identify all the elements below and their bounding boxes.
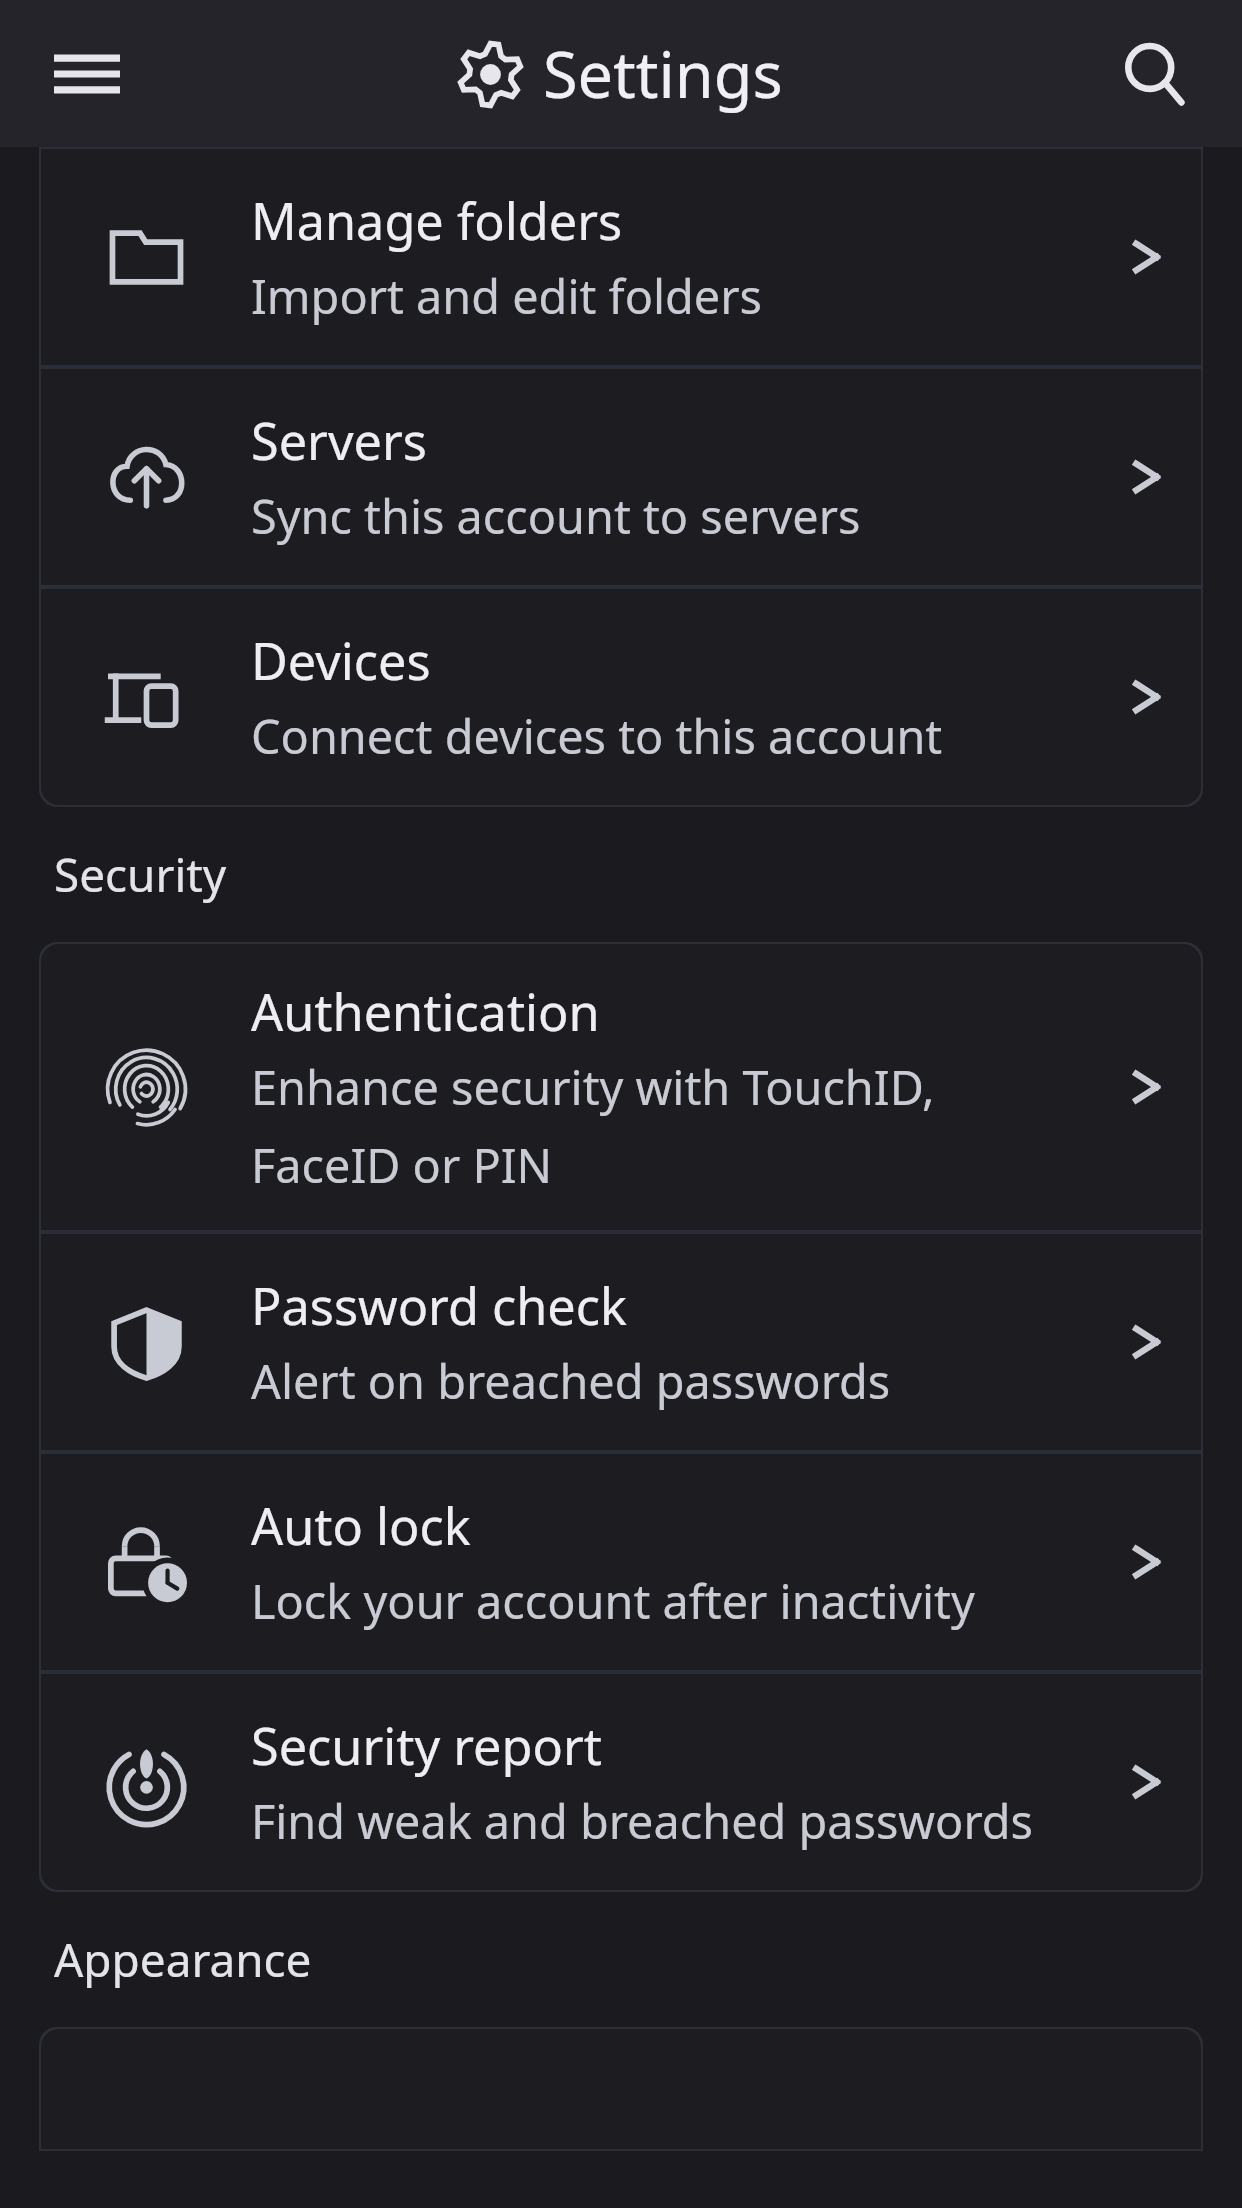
button[interactable]: Servers	[41, 369, 1201, 585]
staticText: Alert on breached passwords	[251, 1349, 891, 1413]
button[interactable]: Search	[1083, 2, 1227, 146]
button[interactable]: Security report	[41, 1674, 1201, 1890]
staticText: Servers	[251, 406, 427, 475]
button[interactable]: Password check	[41, 1234, 1201, 1450]
staticText: Authentication	[251, 977, 600, 1046]
staticText: Password check	[251, 1271, 627, 1340]
button[interactable]: Auto lock	[41, 1454, 1201, 1670]
staticText: Settings	[543, 31, 783, 117]
staticText: Import and edit folders	[251, 264, 762, 328]
staticText: Security report	[251, 1711, 602, 1780]
staticText: Find weak and breached passwords	[251, 1789, 1034, 1853]
button[interactable]: Manage folders	[41, 149, 1201, 365]
button[interactable]: Menu	[15, 2, 159, 146]
button[interactable]: Authentication	[41, 944, 1201, 1230]
staticText: Enhance security with TouchID, FaceID or…	[251, 1055, 1051, 1197]
staticText: Security	[54, 843, 227, 906]
staticText: Lock your account after inactivity	[251, 1569, 975, 1633]
staticText: Manage folders	[251, 186, 623, 255]
staticText: Devices	[251, 626, 431, 695]
button[interactable]: Devices	[41, 589, 1201, 805]
staticText: Sync this account to servers	[251, 484, 861, 548]
staticText: Auto lock	[251, 1491, 471, 1560]
staticText: Connect devices to this account	[251, 704, 943, 768]
staticText: Appearance	[54, 1928, 312, 1991]
